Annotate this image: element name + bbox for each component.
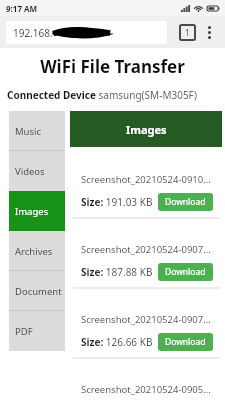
staticText: Size: 126.66 KB	[81, 335, 153, 349]
staticText: 1	[185, 27, 190, 38]
staticText: 9:17 AM	[6, 3, 38, 14]
button[interactable]: Documents	[9, 271, 65, 311]
button[interactable]: Tabs	[180, 25, 195, 40]
button[interactable]: Download	[158, 333, 213, 351]
staticText: Archives	[15, 245, 53, 258]
staticText: Images	[126, 122, 167, 137]
staticText: 192.168.	[13, 26, 53, 40]
staticText: PDF	[15, 325, 33, 338]
staticText: Size: 191.03 KB	[81, 195, 153, 209]
staticText: Screenshot_20210524-0907…	[81, 313, 211, 326]
button[interactable]: Screenshot_20210524-0907…	[72, 300, 220, 357]
button[interactable]: 192.168.	[6, 21, 167, 44]
staticText: Images	[15, 205, 49, 218]
button[interactable]: Download	[158, 193, 213, 211]
staticText: WiFi File Transfer	[0, 55, 225, 78]
staticText: Download	[165, 336, 206, 348]
staticText: Documents	[15, 285, 65, 298]
button[interactable]: Images	[70, 111, 222, 147]
staticText: Download	[165, 266, 206, 278]
button[interactable]: Screenshot_20210524-0907…	[72, 230, 220, 287]
staticText: Connected Device samsung(SM-M305F)	[7, 88, 197, 102]
button[interactable]: Screenshot_20210524-0910…	[72, 160, 220, 217]
staticText: Size: 187.88 KB	[81, 265, 153, 279]
staticText: Screenshot_20210524-0907…	[81, 243, 211, 256]
button[interactable]: Archives	[9, 231, 65, 271]
button[interactable]: Download	[158, 263, 213, 281]
button[interactable]: Videos	[9, 151, 65, 191]
staticText: Download	[165, 196, 206, 208]
staticText: Screenshot_20210524-0905…	[81, 383, 211, 396]
button[interactable]: More options	[199, 22, 219, 42]
button[interactable]: Screenshot_20210524-0905…	[72, 370, 220, 400]
staticText: Music	[15, 125, 42, 138]
staticText: Screenshot_20210524-0910…	[81, 173, 211, 186]
button[interactable]: Music	[9, 111, 65, 151]
button[interactable]: Images	[9, 191, 65, 231]
button[interactable]: PDF	[9, 311, 65, 351]
staticText: Videos	[15, 165, 45, 178]
